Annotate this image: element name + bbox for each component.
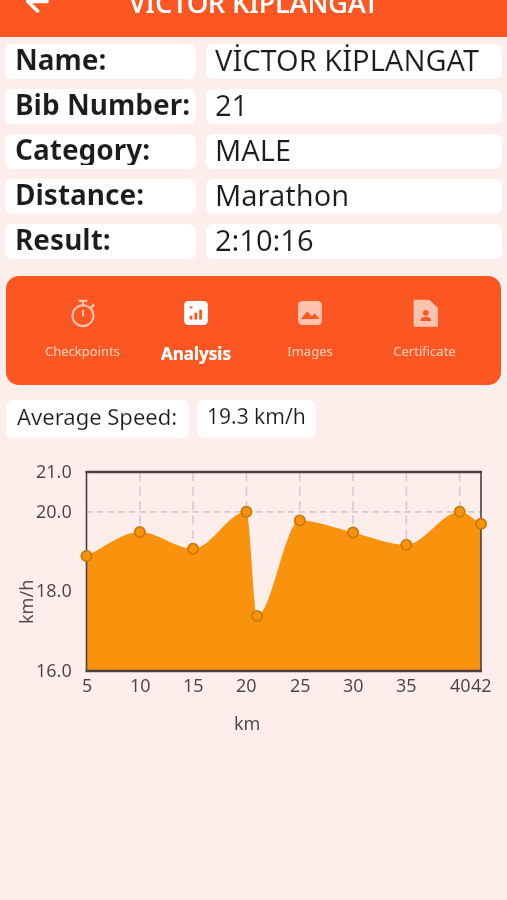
staticText: 30	[343, 673, 364, 698]
staticText: 20.0	[36, 499, 72, 524]
button[interactable]: Marathon	[206, 179, 502, 214]
staticText: Images	[287, 342, 333, 360]
staticText: 40	[450, 673, 471, 698]
staticText: 10	[130, 673, 151, 698]
button[interactable]: Analysis	[139, 276, 253, 385]
staticText: 2:10:16	[215, 224, 314, 255]
staticText: 21.0	[36, 459, 72, 484]
button[interactable]: 2:10:16	[206, 224, 502, 259]
staticText: Distance:	[15, 179, 145, 210]
button[interactable]: 21	[206, 89, 502, 124]
button[interactable]: Images	[253, 276, 367, 385]
staticText: VİCTOR KİPLANGAT	[215, 44, 480, 75]
button[interactable]: Bib Number:	[5, 89, 196, 124]
staticText: Result:	[15, 224, 111, 255]
staticText: 5	[82, 673, 93, 698]
staticText: 42	[471, 673, 492, 698]
staticText: Bib Number:	[15, 89, 191, 120]
button[interactable]: Certificate	[367, 276, 481, 385]
staticText: Name:	[15, 44, 107, 75]
button[interactable]: Checkpoints	[26, 276, 139, 385]
staticText: km	[234, 711, 261, 736]
button[interactable]: Result:	[5, 224, 196, 259]
staticText: 16.0	[36, 658, 72, 683]
button[interactable]: VİCTOR KİPLANGAT	[206, 44, 502, 79]
button[interactable]: MALE	[206, 134, 502, 169]
button[interactable]: Category:	[5, 134, 196, 169]
staticText: 35	[396, 673, 417, 698]
staticText: Checkpoints	[45, 342, 120, 360]
button[interactable]: Distance:	[5, 179, 196, 214]
staticText: 18.0	[36, 578, 72, 603]
staticText: VİCTOR KİPLANGAT	[129, 0, 379, 21]
staticText: Marathon	[215, 179, 350, 210]
button[interactable]: 19.3 km/h	[197, 400, 316, 438]
staticText: Certificate	[393, 342, 456, 360]
staticText: 20	[236, 673, 257, 698]
staticText: MALE	[215, 134, 292, 165]
staticText: km/h	[14, 579, 39, 624]
staticText: 15	[183, 673, 204, 698]
staticText: 19.3 km/h	[207, 402, 306, 431]
button[interactable]: Back	[0, 0, 44, 37]
staticText: 21	[215, 89, 249, 120]
staticText: Category:	[15, 134, 151, 165]
staticText: Analysis	[161, 342, 231, 365]
button[interactable]: Name:	[5, 44, 196, 79]
staticText: Average Speed:	[17, 401, 178, 431]
staticText: 25	[290, 673, 311, 698]
button[interactable]: Average Speed:	[6, 400, 189, 438]
